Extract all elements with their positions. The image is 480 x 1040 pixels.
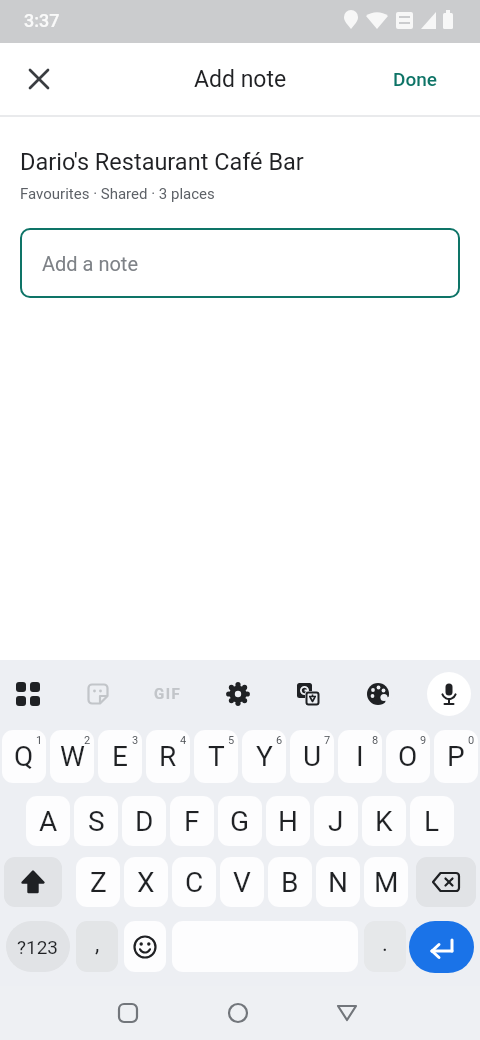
button[interactable]: O <box>386 730 430 783</box>
staticText: J <box>328 805 344 838</box>
button[interactable] <box>4 857 62 907</box>
button[interactable]: F <box>170 796 214 846</box>
staticText: 2 <box>84 734 91 747</box>
staticText: Favourites · Shared · 3 places <box>20 185 215 203</box>
button[interactable]: U <box>290 730 334 783</box>
staticText: Dario's Restaurant Café Bar <box>20 148 304 176</box>
staticText: E <box>112 740 128 773</box>
button[interactable]: J <box>314 796 358 846</box>
staticText: R <box>159 740 177 773</box>
staticText: 1 <box>36 734 43 747</box>
button[interactable]: R <box>146 730 190 783</box>
staticText: W <box>60 740 85 773</box>
button[interactable]: L <box>410 796 454 846</box>
staticText: S <box>88 805 105 838</box>
button[interactable]: D <box>122 796 166 846</box>
staticText: I <box>356 740 364 773</box>
staticText: H <box>278 805 298 838</box>
button[interactable]: A <box>26 796 70 846</box>
staticText: N <box>328 866 348 899</box>
button[interactable] <box>214 670 262 718</box>
button[interactable]: V <box>220 857 264 907</box>
staticText: 3:37 <box>24 10 60 31</box>
staticText: 6 <box>276 734 283 747</box>
button[interactable] <box>325 991 369 1035</box>
staticText: 8 <box>372 734 379 747</box>
button[interactable]: Add a note <box>20 228 460 298</box>
button[interactable]: Done <box>385 60 445 98</box>
button[interactable]: , <box>76 921 118 972</box>
staticText: Q <box>14 740 34 773</box>
button[interactable] <box>416 857 476 907</box>
staticText: . <box>382 931 388 957</box>
staticText: Add note <box>194 66 287 93</box>
button[interactable]: X <box>124 857 168 907</box>
staticText: K <box>375 805 393 838</box>
button[interactable]: Y <box>242 730 286 783</box>
staticText: 7 <box>324 734 331 747</box>
staticText: , <box>95 931 100 957</box>
button[interactable]: S <box>74 796 118 846</box>
button[interactable]: Q <box>2 730 46 783</box>
staticText: 5 <box>228 734 235 747</box>
button[interactable] <box>106 991 150 1035</box>
button[interactable] <box>427 672 471 716</box>
staticText: Y <box>256 740 273 773</box>
button[interactable]: Z <box>76 857 120 907</box>
button[interactable] <box>284 670 332 718</box>
button[interactable]: N <box>316 857 360 907</box>
button[interactable] <box>74 670 122 718</box>
staticText: ?123 <box>17 936 59 958</box>
button[interactable]: E <box>98 730 142 783</box>
button[interactable]: M <box>364 857 408 907</box>
button[interactable]: W <box>50 730 94 783</box>
button[interactable] <box>4 670 52 718</box>
staticText: 3 <box>132 734 139 747</box>
button[interactable] <box>17 57 61 101</box>
staticText: Add a note <box>42 252 139 275</box>
staticText: L <box>424 805 440 838</box>
button[interactable]: C <box>172 857 216 907</box>
button[interactable]: G <box>218 796 262 846</box>
button[interactable] <box>354 670 402 718</box>
button[interactable]: H <box>266 796 310 846</box>
button[interactable]: T <box>194 730 238 783</box>
staticText: T <box>208 740 225 773</box>
staticText: Z <box>90 866 107 899</box>
staticText: U <box>303 740 322 773</box>
staticText: GIF <box>154 685 182 703</box>
staticText: Done <box>393 68 437 90</box>
staticText: G <box>230 805 250 838</box>
staticText: 9 <box>420 734 427 747</box>
staticText: F <box>184 805 200 838</box>
staticText: P <box>447 740 465 773</box>
button[interactable]: K <box>362 796 406 846</box>
button[interactable]: P <box>434 730 478 783</box>
button[interactable]: ?123 <box>6 921 70 972</box>
staticText: B <box>281 866 299 899</box>
staticText: 0 <box>468 734 475 747</box>
button[interactable]: I <box>338 730 382 783</box>
staticText: M <box>374 866 399 899</box>
staticText: D <box>135 805 154 838</box>
button[interactable]: GIF <box>144 670 192 718</box>
staticText: A <box>39 805 58 838</box>
staticText: C <box>185 866 204 899</box>
staticText: 4 <box>180 734 187 747</box>
button[interactable]: . <box>364 921 406 972</box>
button[interactable]: B <box>268 857 312 907</box>
staticText: V <box>233 866 251 899</box>
staticText: X <box>137 866 155 899</box>
button[interactable] <box>409 921 474 973</box>
button[interactable] <box>216 991 260 1035</box>
staticText: O <box>398 740 418 773</box>
button[interactable] <box>124 921 166 972</box>
